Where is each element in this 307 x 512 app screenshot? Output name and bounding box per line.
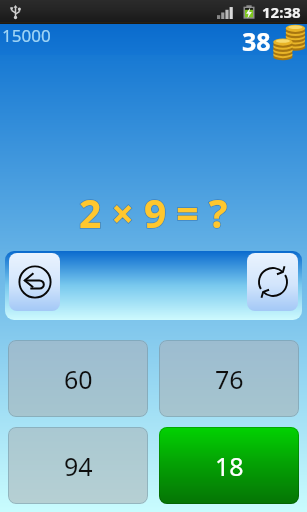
staticText: 60	[64, 362, 93, 396]
button[interactable]: 18	[159, 427, 299, 504]
button[interactable]: Back	[9, 253, 60, 311]
staticText: 2 × 9 = ?	[79, 186, 228, 239]
button[interactable]: 76	[159, 340, 299, 417]
button[interactable]: 60	[8, 340, 148, 417]
staticText: 12:38	[262, 2, 301, 22]
button[interactable]: 94	[8, 427, 148, 504]
staticText: 2 × 9 = ?	[79, 186, 228, 239]
button[interactable]: Refresh	[247, 253, 298, 311]
staticText: 94	[64, 449, 93, 483]
staticText: 15000	[2, 24, 51, 47]
staticText: 38	[242, 24, 271, 55]
staticText: 76	[215, 362, 244, 396]
staticText: 18	[215, 449, 244, 483]
